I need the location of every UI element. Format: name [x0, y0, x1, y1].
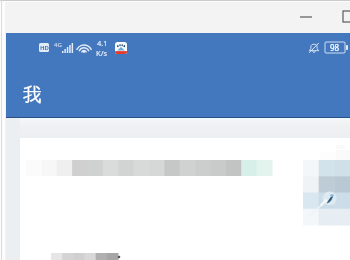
button[interactable]: Minimize — [285, 2, 327, 31]
staticText: K/s — [96, 48, 108, 58]
staticText: 4.1 — [97, 38, 108, 48]
staticText: 98 — [330, 42, 340, 53]
button[interactable]: Maximize — [327, 2, 350, 31]
staticText: HD — [40, 44, 49, 52]
staticText: 4G — [54, 41, 62, 49]
staticText: 我 — [23, 83, 42, 106]
other: Notifications muted — [308, 42, 320, 54]
